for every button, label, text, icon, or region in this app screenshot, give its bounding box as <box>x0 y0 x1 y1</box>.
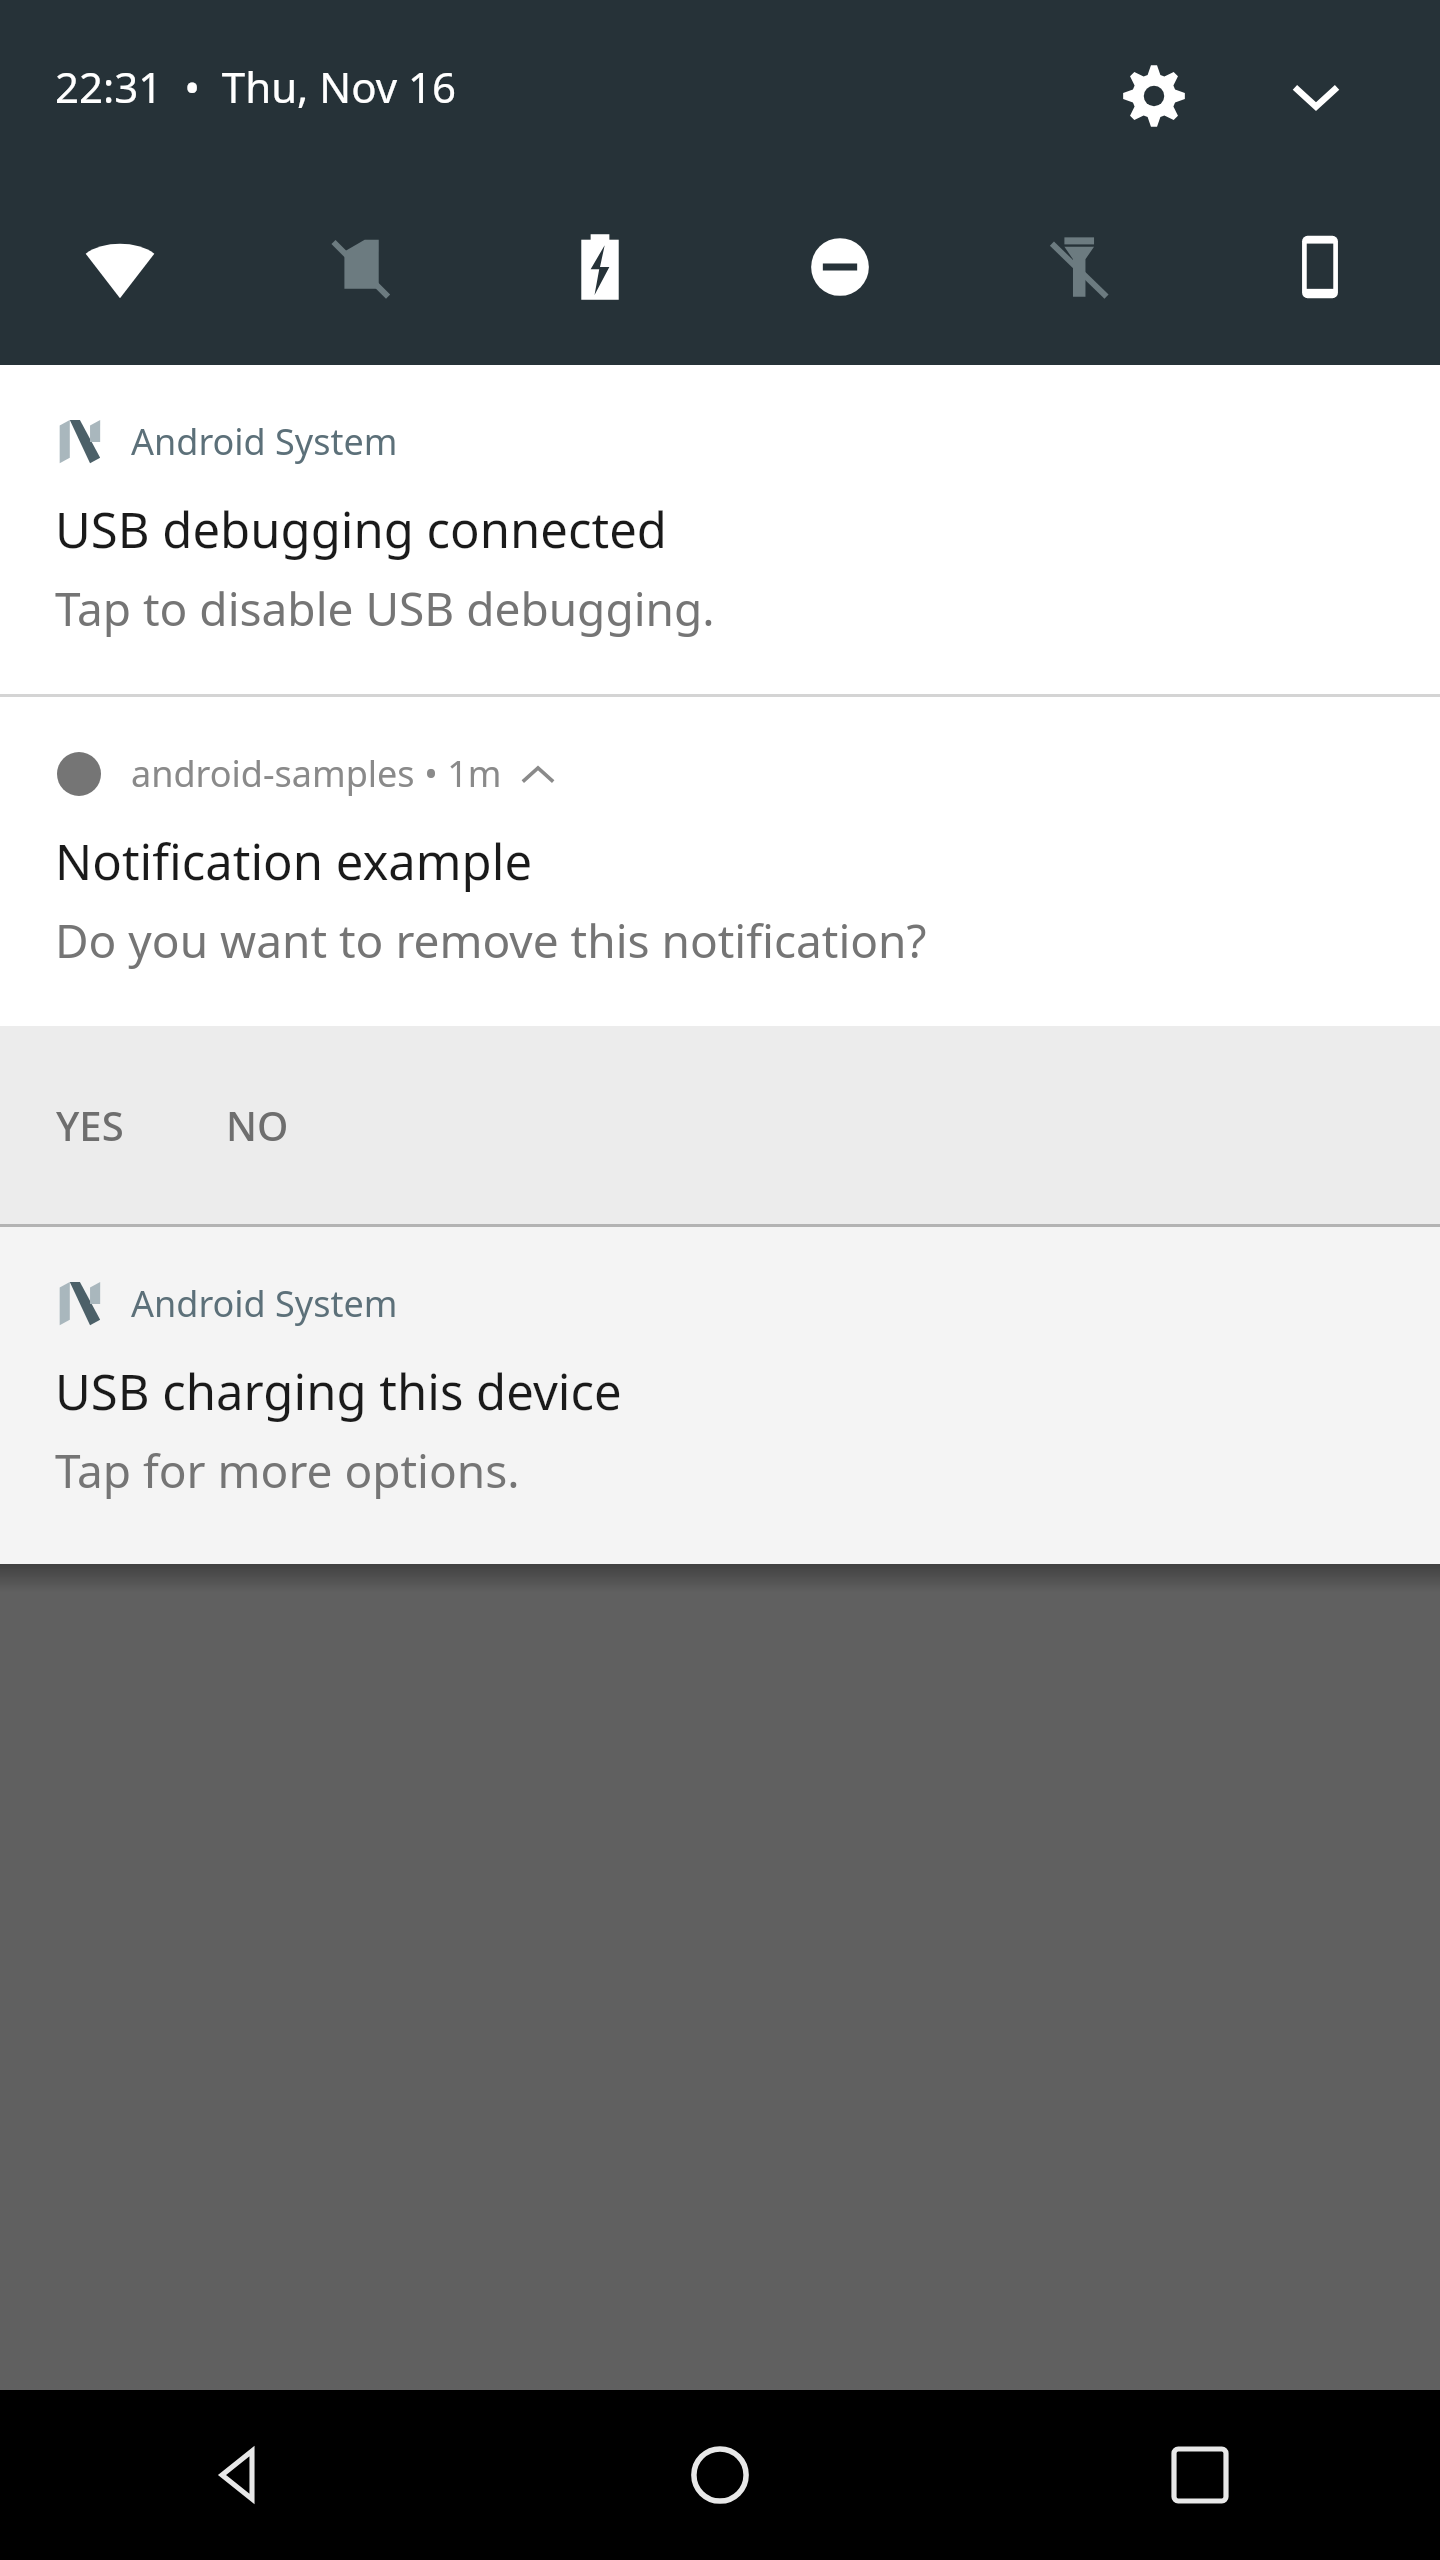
button[interactable]: Settings <box>1100 42 1208 150</box>
staticText: Tap for more options. <box>55 1439 520 1502</box>
staticText: USB debugging connected <box>55 496 667 563</box>
staticText: Notification example <box>55 828 533 895</box>
staticText: Do you want to remove this notification? <box>55 909 927 972</box>
button[interactable]: Android System <box>0 1227 1440 1564</box>
staticText: Tap to disable USB debugging. <box>55 577 715 640</box>
staticText: • 1m <box>415 749 502 798</box>
button[interactable]: Mobile data off <box>300 207 420 327</box>
staticText: Android System <box>131 417 398 466</box>
button[interactable]: Auto rotate <box>1260 207 1380 327</box>
button[interactable]: NO <box>192 1076 323 1174</box>
button[interactable]: Android System <box>0 365 1440 694</box>
staticText: USB charging this device <box>55 1358 622 1425</box>
staticText: android-samples <box>131 749 415 798</box>
button[interactable]: android-samples <box>0 697 1440 1026</box>
button[interactable]: Do not disturb <box>780 207 900 327</box>
button[interactable]: Collapse <box>1262 42 1370 150</box>
button[interactable]: Home <box>480 2390 960 2560</box>
button[interactable]: Wi-Fi <box>60 207 180 327</box>
button[interactable]: Recents <box>960 2390 1440 2560</box>
button[interactable]: YES <box>22 1076 158 1174</box>
staticText: YES <box>56 1098 124 1152</box>
staticText: 22:31 • Thu, Nov 16 <box>55 58 457 115</box>
button[interactable]: Flashlight off <box>1020 207 1140 327</box>
staticText: Android System <box>131 1279 398 1328</box>
button[interactable]: Battery charging <box>540 207 660 327</box>
staticText: NO <box>226 1098 289 1152</box>
button[interactable]: Back <box>0 2390 480 2560</box>
